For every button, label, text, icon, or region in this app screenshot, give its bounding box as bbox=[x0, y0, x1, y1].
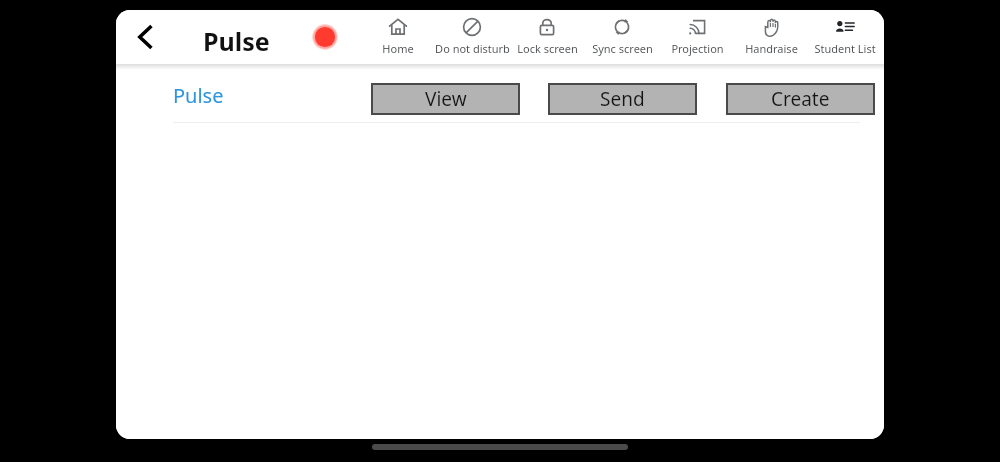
button[interactable]: View bbox=[371, 83, 520, 115]
button[interactable]: Home bbox=[359, 15, 437, 61]
staticText: Pulse bbox=[203, 24, 270, 58]
staticText: View bbox=[425, 86, 467, 112]
staticText: Create bbox=[771, 86, 830, 112]
staticText: Student List bbox=[814, 41, 876, 56]
button[interactable]: Sync screen bbox=[583, 15, 661, 61]
staticText: Sync screen bbox=[592, 41, 653, 56]
staticText: Home bbox=[382, 41, 414, 56]
button[interactable]: Recording bbox=[309, 21, 341, 53]
button[interactable]: Back bbox=[125, 16, 167, 58]
staticText: Send bbox=[600, 86, 645, 112]
button[interactable]: Handraise bbox=[732, 15, 810, 61]
button[interactable]: Projection bbox=[658, 15, 736, 61]
button[interactable]: Lock screen bbox=[508, 15, 586, 61]
staticText: Lock screen bbox=[517, 41, 578, 56]
staticText: Handraise bbox=[745, 41, 798, 56]
staticText: Projection bbox=[671, 41, 724, 56]
staticText: Do not disturb bbox=[435, 41, 510, 56]
button[interactable]: Do not disturb bbox=[433, 15, 511, 61]
button[interactable]: Student List bbox=[806, 15, 884, 61]
staticText: Pulse bbox=[173, 82, 224, 109]
button[interactable]: Send bbox=[548, 83, 697, 115]
button[interactable]: Create bbox=[726, 83, 875, 115]
button[interactable]: Pulse bbox=[171, 80, 226, 111]
